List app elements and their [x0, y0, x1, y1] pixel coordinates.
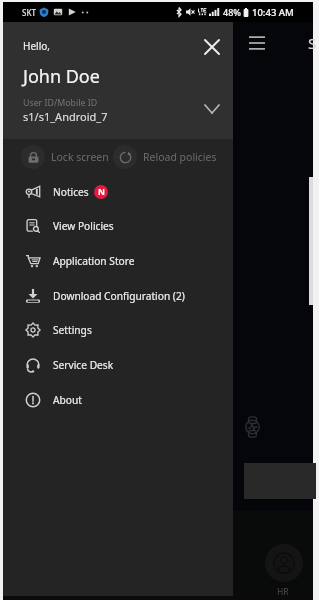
button[interactable]: About [3, 383, 233, 417]
button[interactable]: View Policies [3, 209, 233, 243]
staticText: Service Desk [53, 358, 114, 372]
button[interactable]: Lock screen [21, 139, 109, 175]
staticText: View Policies [53, 219, 114, 233]
button[interactable]: Service Desk [3, 348, 233, 382]
staticText: Reload policies [143, 150, 217, 164]
button[interactable]: Heart rate [265, 544, 303, 582]
staticText: Notices [53, 185, 89, 199]
staticText: Settings [53, 323, 92, 337]
staticText: 10:43 AM [252, 6, 294, 19]
staticText: S [308, 33, 317, 53]
staticText: SKT [22, 7, 36, 18]
button[interactable]: Notices [3, 175, 233, 209]
staticText: HR [277, 586, 289, 598]
staticText: Lock screen [51, 150, 109, 164]
staticText: N [98, 186, 105, 198]
button[interactable]: Close drawer [199, 34, 225, 60]
button[interactable]: Application Store [3, 244, 233, 278]
staticText: User ID/Mobile ID [23, 97, 98, 109]
button[interactable]: Settings [3, 313, 233, 347]
button[interactable]: Expand account [199, 96, 225, 122]
staticText: s1/s1_Android_7 [23, 109, 108, 124]
staticText: Download Configuration (2) [53, 289, 185, 303]
staticText: About [53, 393, 82, 407]
staticText: Hello, [23, 39, 50, 53]
button[interactable]: Reload policies [113, 139, 217, 175]
staticText: Application Store [53, 254, 135, 268]
staticText: John Doe [23, 64, 100, 89]
staticText: 48% [223, 6, 241, 18]
button[interactable]: Open navigation menu [246, 32, 268, 54]
button[interactable]: Download Configuration (2) [3, 279, 233, 313]
